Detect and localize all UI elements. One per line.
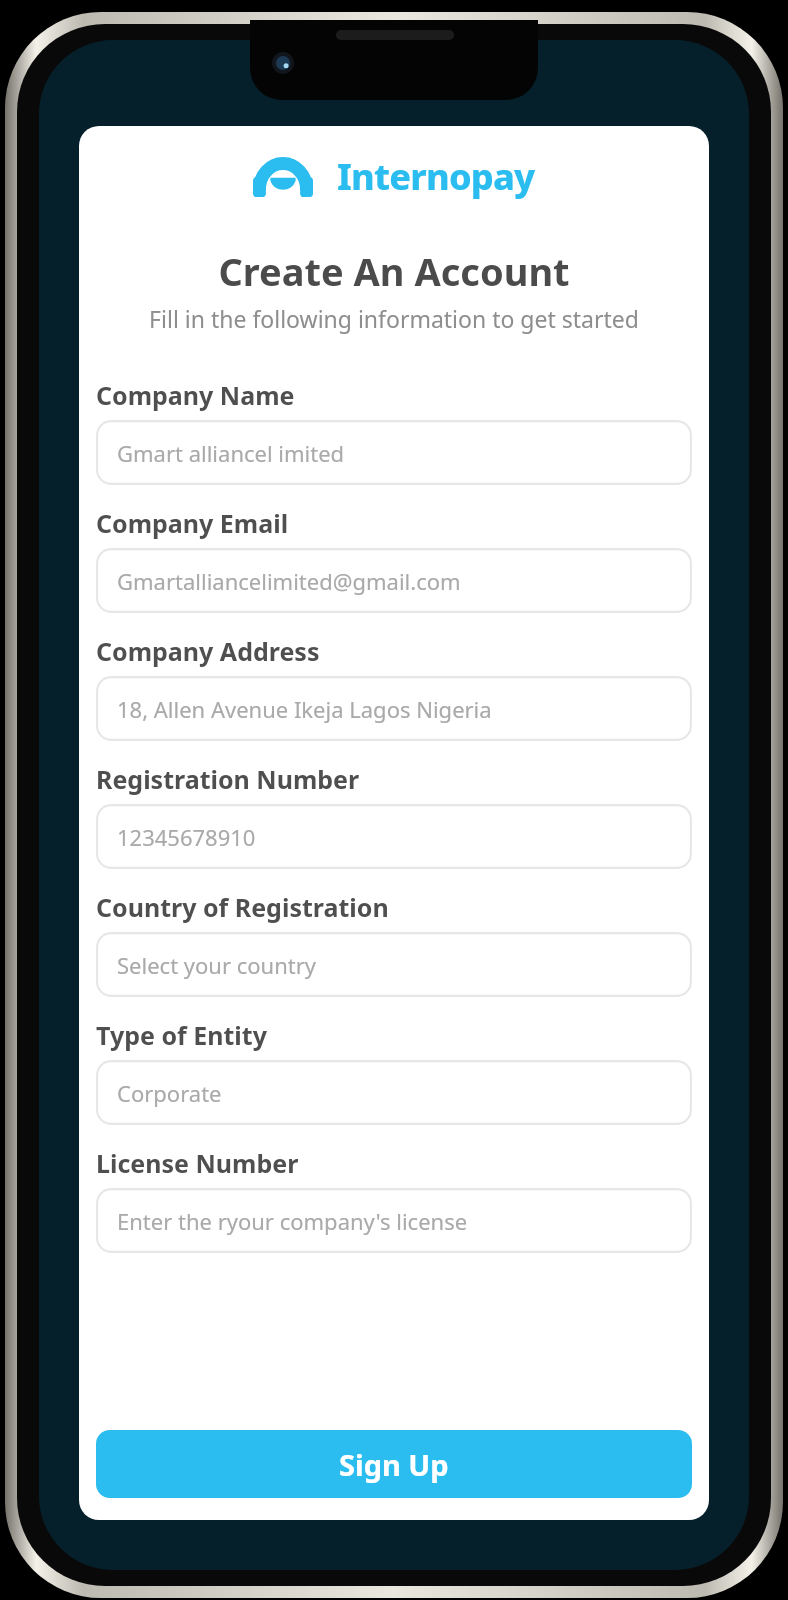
staticText: Company Email [96,506,289,540]
other: Internopay logo [253,157,313,197]
staticText: Select your country [117,950,317,980]
button[interactable]: Corporate [96,1060,692,1125]
staticText: Sign Up [339,1445,449,1484]
staticText: Internopay [337,152,535,201]
staticText: Type of Entity [96,1018,267,1052]
staticText: 18, Allen Avenue Ikeja Lagos Nigeria [117,694,492,724]
staticText: Country of Registration [96,890,389,924]
button[interactable]: Select your country [96,932,692,997]
staticText: 12345678910 [117,822,256,852]
button[interactable]: Gmartalliancelimited@gmail.com [96,548,692,613]
staticText: Company Address [96,634,320,668]
button[interactable]: Sign Up [96,1430,692,1498]
staticText: Fill in the following information to get… [79,303,709,334]
staticText: Company Name [96,378,295,412]
staticText: Create An Account [79,245,709,297]
staticText: Gmart alliancel imited [117,438,345,468]
staticText: Registration Number [96,762,360,796]
button[interactable]: 12345678910 [96,804,692,869]
staticText: Corporate [117,1078,222,1108]
button[interactable]: Gmart alliancel imited [96,420,692,485]
staticText: Gmartalliancelimited@gmail.com [117,566,461,596]
button[interactable]: 18, Allen Avenue Ikeja Lagos Nigeria [96,676,692,741]
staticText: Enter the ryour company's license [117,1206,468,1236]
button[interactable]: Enter the ryour company's license [96,1188,692,1253]
staticText: License Number [96,1146,299,1180]
